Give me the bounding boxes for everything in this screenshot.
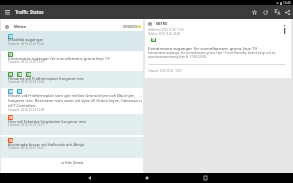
button[interactable]: Open navigation drawer (0, 5, 15, 19)
staticText: Extrainsatta avgångar för tunnelbanans g… (148, 51, 286, 59)
staticText: Metro (14, 24, 27, 29)
staticText: Created: 2016-12-21 16:21 (8, 146, 45, 150)
staticText: 11 (9, 73, 13, 77)
button[interactable]: 10 (1, 88, 143, 115)
staticText: Traffic Status (15, 9, 44, 15)
button[interactable]: Share (282, 5, 293, 19)
button[interactable]: Home (118, 173, 176, 183)
button[interactable]: 13 (1, 137, 143, 158)
staticText: Inställda avgångar (8, 37, 44, 42)
staticText: 13 (9, 35, 13, 39)
staticText: Created: 2016-12-26 13:07 (8, 60, 45, 64)
button[interactable]: Back (60, 173, 118, 183)
staticText: 12:46 (283, 1, 291, 5)
staticText: i (283, 21, 287, 34)
staticText: Avstängda hissar vid Hallunda och Älvsjö (8, 142, 85, 147)
button[interactable]: Recent apps (176, 173, 234, 183)
staticText: Extrainsatta avgångar för tunnelbanans g… (148, 45, 257, 51)
button[interactable]: 11 (1, 51, 143, 72)
staticText: 19 (27, 73, 31, 77)
button[interactable]: 11 (1, 71, 143, 88)
staticText: METRO (156, 22, 168, 26)
button[interactable]: 14 (1, 114, 143, 135)
staticText: Extrainsatta avgångar för tunnelbanans g… (8, 56, 110, 61)
staticText: Valid from: 2016-12-26 11:00 (148, 28, 184, 32)
staticText: DEVIATION (123, 25, 138, 29)
staticText: Valid to: 2016-12-26 20:00 (148, 32, 180, 36)
staticText: Created: 2016-12-26 13:07 (148, 69, 182, 73)
staticText: Hissen vid Fridhemsplan som går mellan G… (8, 93, 146, 108)
button[interactable]: Translate (271, 5, 282, 19)
staticText: Hissarna vid Fridhemsplan fungerar inte (8, 76, 84, 81)
staticText: 19 (152, 38, 156, 42)
staticText: Created: 2016-12-23 12:38 (8, 108, 45, 112)
staticText: Created: 2016-12-26 16:42 (8, 42, 45, 46)
staticText: 14 (9, 116, 13, 120)
staticText: ! (139, 25, 140, 28)
staticText: 11 (9, 53, 13, 57)
button[interactable]: 13 (1, 31, 143, 51)
button[interactable]: Hide Details (1, 158, 143, 173)
staticText: 10 (9, 90, 13, 94)
button[interactable]: Favorite (249, 5, 260, 19)
staticText: Created: 2016-12-23 12:19 (8, 123, 45, 127)
staticText: 11 (18, 90, 22, 94)
staticText: Hiss vid Tekniska högskolan fungerar int… (8, 119, 86, 124)
button[interactable]: Information (279, 21, 290, 34)
staticText: Created: 2016-12-23 12:46 (8, 80, 45, 84)
staticText: Hide Details (65, 161, 84, 165)
button[interactable]: Refresh (260, 5, 271, 19)
staticText: 13 (9, 139, 13, 143)
staticText: 18 (18, 73, 22, 77)
